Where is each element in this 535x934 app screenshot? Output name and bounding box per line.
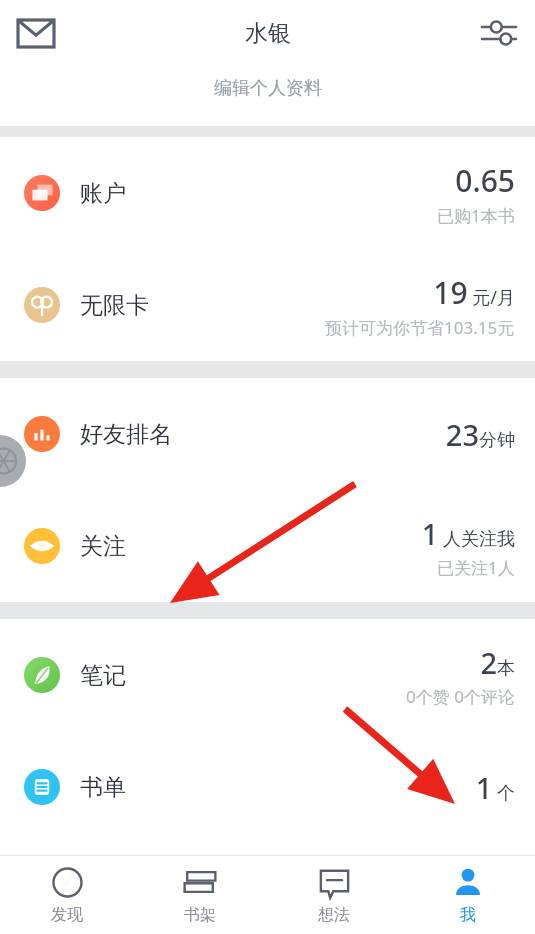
staticText: 1 人关注我: [421, 514, 515, 553]
staticText: 我: [460, 905, 476, 925]
staticText: 好友排名: [80, 420, 172, 449]
staticText: 19 元/月: [433, 272, 515, 313]
staticText: 0个赞 0个评论: [406, 685, 515, 708]
button[interactable]: 书架: [133, 856, 267, 934]
button[interactable]: 无限卡: [0, 249, 535, 361]
staticText: 无限卡: [80, 291, 149, 320]
staticText: 0.65: [455, 160, 515, 201]
button[interactable]: 书单: [0, 731, 535, 843]
staticText: 水银: [245, 19, 291, 48]
button[interactable]: 好友排名: [0, 378, 535, 490]
button[interactable]: Settings: [473, 7, 525, 59]
button[interactable]: 账户: [0, 137, 535, 249]
button[interactable]: Messages: [10, 7, 62, 59]
staticText: 2本: [480, 643, 515, 682]
staticText: 已购1本书: [437, 204, 515, 227]
button[interactable]: 编辑个人资料: [0, 66, 535, 126]
staticText: 发现: [51, 905, 83, 925]
staticText: 编辑个人资料: [214, 77, 322, 100]
staticText: 账户: [80, 179, 126, 208]
staticText: 已关注1人: [437, 556, 515, 579]
staticText: 1 个: [475, 768, 515, 807]
button[interactable]: 笔记: [0, 619, 535, 731]
staticText: 关注: [80, 532, 126, 561]
staticText: 想法: [318, 905, 350, 925]
staticText: 23分钟: [445, 415, 515, 454]
staticText: 笔记: [80, 661, 126, 690]
button[interactable]: Assistant: [0, 435, 30, 487]
button[interactable]: 我: [401, 856, 535, 934]
button[interactable]: 想法: [267, 856, 401, 934]
staticText: 预计可为你节省103.15元: [325, 316, 515, 339]
staticText: 书架: [184, 905, 216, 925]
staticText: 书单: [80, 773, 126, 802]
button[interactable]: 关注: [0, 490, 535, 602]
button[interactable]: 发现: [0, 856, 133, 934]
